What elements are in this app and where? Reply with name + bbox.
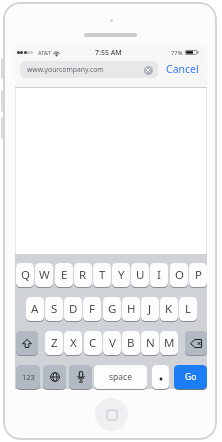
button[interactable]: S [45,297,63,321]
button[interactable]: P [189,263,207,287]
staticText: B [127,335,135,351]
staticText: 77% [171,49,183,57]
staticText: G [108,301,117,317]
staticText: Go [185,371,197,383]
staticText: A [31,301,39,317]
staticText: O [175,267,184,283]
button[interactable] [144,66,153,75]
staticText: U [136,267,145,283]
staticText: 7:55 AM [95,48,122,58]
staticText: K [165,301,173,317]
staticText: S [51,301,58,317]
staticText: Y [118,267,125,283]
button[interactable]: B [122,331,140,355]
button[interactable] [185,331,207,355]
staticText: 123 [22,372,35,382]
button[interactable] [69,365,92,389]
staticText: T [99,267,106,283]
button[interactable]: I [150,263,168,287]
staticText: L [185,301,192,317]
button[interactable] [95,398,128,431]
button[interactable]: C [84,331,102,355]
button[interactable]: X [64,331,82,355]
staticText: H [127,301,136,317]
button[interactable]: A [26,297,44,321]
button[interactable] [152,365,169,389]
button[interactable]: W [35,263,53,287]
staticText: P [195,267,202,283]
button[interactable] [16,331,38,355]
staticText: D [69,301,78,317]
staticText: I [157,267,161,283]
staticText: Q [21,267,30,283]
staticText: C [89,335,97,351]
staticText: space [109,371,132,383]
button[interactable]: K [160,297,178,321]
staticText: Cancel [166,62,199,76]
staticText: N [146,335,155,351]
button[interactable]: Z [45,331,63,355]
button[interactable]: G [103,297,121,321]
button[interactable]: space [94,365,147,389]
button[interactable]: Cancel [162,60,202,78]
button[interactable]: Y [112,263,130,287]
button[interactable]: D [64,297,82,321]
staticText: R [79,267,87,283]
button[interactable]: F [83,297,101,321]
button[interactable]: 123 [16,365,40,389]
staticText: F [89,301,95,317]
button[interactable]: Go [174,365,207,389]
button[interactable]: N [141,331,159,355]
button[interactable]: E [55,263,73,287]
staticText: V [109,335,116,351]
button[interactable]: V [103,331,121,355]
button[interactable]: M [160,331,178,355]
button[interactable]: T [93,263,111,287]
button[interactable]: R [74,263,92,287]
staticText: M [164,335,175,351]
staticText: X [70,335,77,351]
button[interactable]: J [141,297,159,321]
button[interactable] [20,61,158,78]
staticText: AT&T [38,49,51,56]
button[interactable] [43,365,66,389]
staticText: Z [51,335,58,351]
button[interactable]: H [122,297,140,321]
button[interactable]: Q [16,263,34,287]
button[interactable]: L [179,297,197,321]
staticText: www.yourcompany.com [27,65,104,74]
staticText: J [148,301,152,317]
staticText: W [39,267,50,283]
staticText: E [61,267,68,283]
button[interactable]: O [170,263,188,287]
button[interactable]: U [131,263,149,287]
